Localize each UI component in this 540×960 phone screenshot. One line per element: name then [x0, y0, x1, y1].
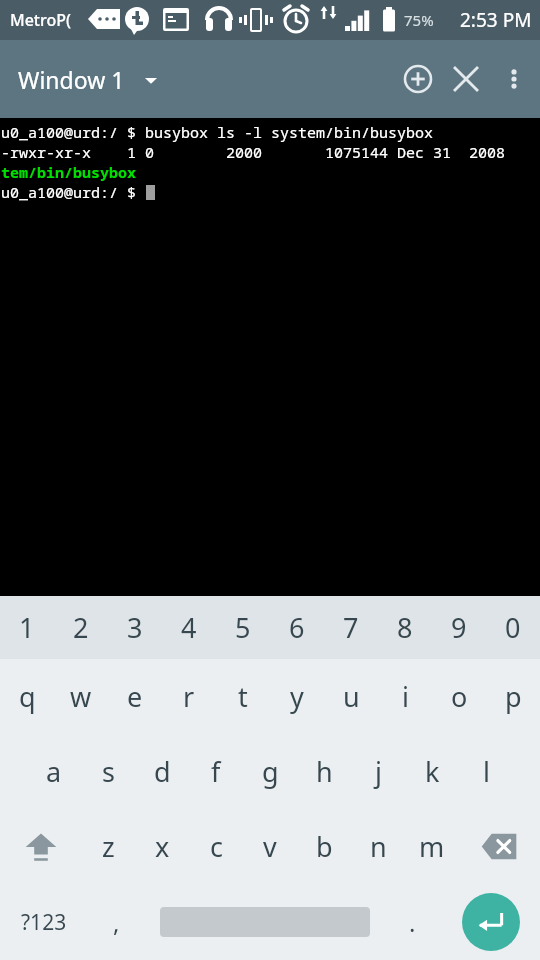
button[interactable]: Close window	[442, 55, 490, 103]
staticText: r	[183, 678, 195, 715]
staticText: 0	[505, 609, 521, 646]
staticText: 2:53 PM	[460, 7, 532, 33]
button[interactable]: n	[351, 809, 405, 884]
staticText: 5	[235, 609, 251, 646]
button[interactable]: Window 1	[0, 56, 171, 103]
button[interactable]: t	[216, 659, 270, 734]
button[interactable]: u	[324, 659, 378, 734]
staticText: i	[402, 678, 409, 715]
staticText: c	[210, 828, 223, 865]
staticText: t	[238, 678, 248, 715]
staticText: ,	[113, 906, 120, 939]
button[interactable]: j	[351, 734, 405, 809]
button[interactable]: o	[432, 659, 486, 734]
staticText: ?123	[21, 908, 67, 937]
button[interactable]: f	[189, 734, 243, 809]
staticText: u	[343, 678, 360, 715]
staticText: 2	[73, 609, 89, 646]
staticText: a	[46, 753, 62, 790]
button[interactable]: 6	[270, 596, 324, 659]
button[interactable]: 7	[324, 596, 378, 659]
button[interactable]: New window	[394, 55, 442, 103]
staticText: y	[290, 678, 304, 715]
staticText: w	[70, 678, 92, 715]
staticText: 8	[397, 609, 413, 646]
button[interactable]: u0_a100@urd:/ $ busybox ls -l system/bin…	[0, 118, 540, 596]
button[interactable]: b	[297, 809, 351, 884]
button[interactable]: 1	[0, 596, 54, 659]
button[interactable]: y	[270, 659, 324, 734]
staticText: p	[505, 678, 522, 715]
staticText: e	[127, 678, 143, 715]
staticText: j	[375, 753, 382, 790]
staticText: tem/bin/busybox	[1, 162, 137, 182]
button[interactable]: a	[27, 734, 81, 809]
staticText: o	[451, 678, 468, 715]
button[interactable]: x	[135, 809, 189, 884]
staticText: l	[483, 753, 490, 790]
staticText: s	[102, 753, 115, 790]
button[interactable]: 4	[162, 596, 216, 659]
staticText: Window 1	[18, 64, 125, 95]
staticText: g	[262, 753, 279, 790]
staticText: f	[211, 753, 221, 790]
button[interactable]: r	[162, 659, 216, 734]
button[interactable]: w	[54, 659, 108, 734]
button[interactable]: ?123	[0, 884, 88, 960]
button[interactable]: More options	[490, 55, 538, 103]
button[interactable]: 2	[54, 596, 108, 659]
button[interactable]: k	[405, 734, 459, 809]
button[interactable]: 9	[432, 596, 486, 659]
staticText: m	[419, 828, 445, 865]
staticText: 75%	[404, 10, 434, 30]
button[interactable]: m	[405, 809, 459, 884]
button[interactable]: c	[189, 809, 243, 884]
button[interactable]: 3	[108, 596, 162, 659]
staticText: d	[154, 753, 171, 790]
staticText: 9	[451, 609, 467, 646]
button[interactable]: 0	[486, 596, 540, 659]
button[interactable]: s	[81, 734, 135, 809]
staticText: n	[370, 828, 387, 865]
button[interactable]: d	[135, 734, 189, 809]
staticText: MetroP(	[10, 9, 71, 31]
staticText: u0_a100@urd:/ $ busybox ls -l system/bin…	[1, 122, 434, 142]
staticText: k	[425, 753, 440, 790]
staticText: 7	[343, 609, 359, 646]
staticText: .	[409, 906, 416, 939]
button[interactable]: g	[243, 734, 297, 809]
button[interactable]: .	[384, 884, 441, 960]
button[interactable]: e	[108, 659, 162, 734]
staticText: v	[263, 828, 277, 865]
button[interactable]: z	[81, 809, 135, 884]
staticText: -rwxr-xr-x 1 0 2000 1075144 Dec 31 2008 …	[1, 142, 540, 162]
staticText: q	[19, 678, 36, 715]
button[interactable]: Backspace	[459, 809, 540, 884]
staticText: 6	[289, 609, 305, 646]
button[interactable]: h	[297, 734, 351, 809]
button[interactable]: 5	[216, 596, 270, 659]
button[interactable]	[145, 884, 384, 960]
staticText: 1	[19, 609, 35, 646]
staticText: b	[316, 828, 333, 865]
button[interactable]: l	[459, 734, 513, 809]
button[interactable]: i	[378, 659, 432, 734]
staticText: 4	[181, 609, 197, 646]
button[interactable]: p	[486, 659, 540, 734]
button[interactable]: 8	[378, 596, 432, 659]
button[interactable]: v	[243, 809, 297, 884]
staticText: u0_a100@urd:/ $	[1, 182, 146, 202]
staticText: 3	[127, 609, 143, 646]
button[interactable]: ,	[88, 884, 145, 960]
button[interactable]: q	[0, 659, 54, 734]
staticText: z	[102, 828, 115, 865]
staticText: x	[155, 828, 170, 865]
button[interactable]: Enter	[462, 893, 520, 951]
staticText: h	[316, 753, 333, 790]
button[interactable]: Shift	[0, 809, 81, 884]
